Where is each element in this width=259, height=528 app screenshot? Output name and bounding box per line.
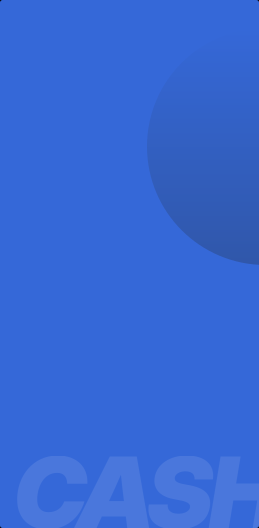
staticText: CASH: [14, 433, 259, 528]
